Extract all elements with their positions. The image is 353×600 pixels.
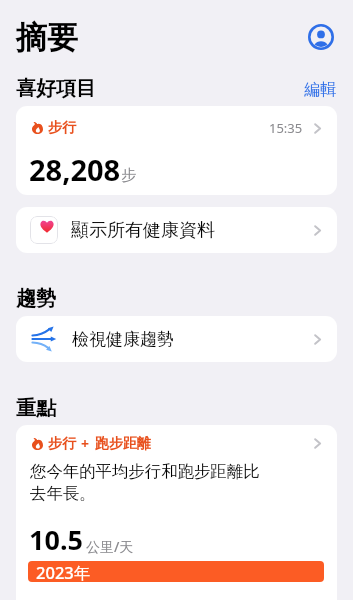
staticText: 喜好項目: [16, 76, 96, 101]
button[interactable]: 編輯: [294, 72, 346, 108]
staticText: 10.5: [29, 521, 83, 558]
button[interactable]: 顯示所有健康資料: [16, 207, 337, 253]
staticText: 趨勢: [16, 286, 56, 311]
staticText: 重點: [16, 396, 56, 421]
staticText: 顯示所有健康資料: [71, 219, 215, 242]
staticText: 2023年: [36, 561, 91, 582]
staticText: 步行: [48, 435, 76, 453]
staticText: 15:35: [269, 119, 303, 137]
staticText: 步行: [48, 119, 76, 137]
button[interactable]: 步行: [16, 425, 337, 600]
staticText: 您今年的平均步行和跑步距離比去年長。: [30, 461, 266, 505]
staticText: +: [81, 434, 90, 453]
staticText: 公里/天: [86, 537, 134, 556]
button[interactable]: 步行: [16, 106, 337, 195]
staticText: 編輯: [304, 80, 336, 100]
staticText: 摘要: [16, 18, 78, 57]
staticText: 步: [121, 166, 136, 185]
button[interactable]: 檢視健康趨勢: [16, 316, 337, 362]
staticText: 跑步距離: [95, 435, 151, 453]
button[interactable]: Profile: [304, 20, 338, 54]
staticText: 28,208: [29, 150, 121, 189]
staticText: 檢視健康趨勢: [72, 329, 174, 350]
